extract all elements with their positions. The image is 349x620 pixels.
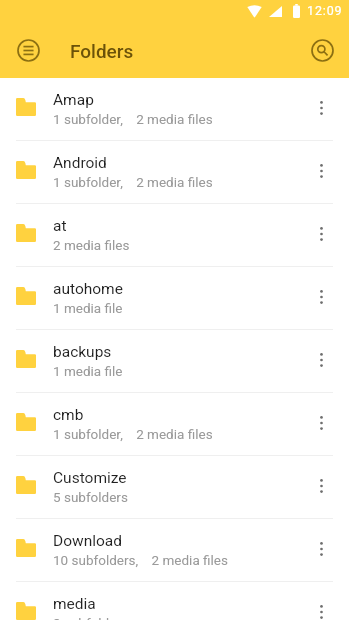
staticText: media	[53, 595, 96, 613]
button[interactable]: More options	[301, 141, 349, 203]
button[interactable]: More options	[301, 519, 349, 581]
button[interactable]: at	[0, 204, 349, 266]
staticText: cmb	[53, 406, 84, 424]
button[interactable]: More options	[301, 393, 349, 455]
button[interactable]: Android	[0, 141, 349, 203]
staticText: 2 subfolders	[53, 615, 128, 620]
button[interactable]: media	[0, 582, 349, 620]
staticText: Folders	[70, 40, 134, 62]
staticText: 1 media file	[53, 300, 123, 316]
button[interactable]: Amap	[0, 78, 349, 140]
button[interactable]: cmb	[0, 393, 349, 455]
staticText: backups	[53, 343, 112, 361]
button[interactable]: Navigation menu	[8, 30, 48, 70]
button[interactable]: Customize	[0, 456, 349, 518]
button[interactable]: More options	[301, 204, 349, 266]
staticText: Android	[53, 154, 107, 172]
staticText: 2 media files	[53, 237, 130, 253]
button[interactable]: Search	[302, 30, 342, 70]
staticText: autohome	[53, 280, 123, 298]
button[interactable]: backups	[0, 330, 349, 392]
staticText: 5 subfolders	[53, 489, 128, 505]
button[interactable]: autohome	[0, 267, 349, 329]
staticText: 12:09	[307, 3, 343, 18]
button[interactable]: More options	[301, 78, 349, 140]
button[interactable]: More options	[301, 267, 349, 329]
staticText: 1 media file	[53, 363, 123, 379]
button[interactable]: More options	[301, 456, 349, 518]
staticText: 10 subfolders, 2 media files	[53, 552, 228, 568]
staticText: 1 subfolder, 2 media files	[53, 111, 213, 127]
staticText: Download	[53, 532, 123, 550]
button[interactable]: More options	[301, 582, 349, 620]
button[interactable]: More options	[301, 330, 349, 392]
staticText: Customize	[53, 469, 127, 487]
staticText: Amap	[53, 91, 94, 109]
staticText: 1 subfolder, 2 media files	[53, 426, 213, 442]
staticText: 1 subfolder, 2 media files	[53, 174, 213, 190]
staticText: at	[53, 217, 67, 235]
button[interactable]: Download	[0, 519, 349, 581]
